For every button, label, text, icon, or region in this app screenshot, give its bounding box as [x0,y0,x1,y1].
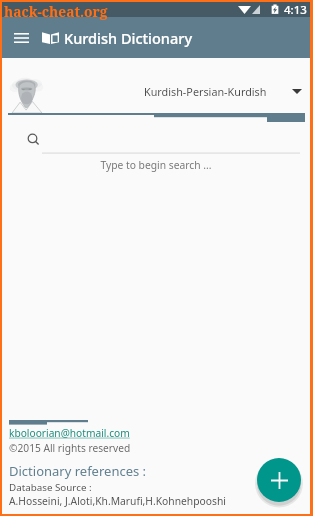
button[interactable]: Search [2,132,310,154]
staticText: hack-cheat.org [4,2,108,21]
button[interactable]: Dictionary language selector [144,84,302,99]
staticText: Kurdish Dictionary [64,28,193,48]
button[interactable]: Open navigation drawer [10,27,32,49]
button[interactable]: kboloorian@hotmail.com [9,426,130,440]
staticText: Database Source : [9,481,92,494]
staticText: ©2015 All rights reserved [9,441,131,455]
button[interactable]: Add word [257,458,301,502]
staticText: Kurdish-Persian-Kurdish [144,84,267,99]
staticText: 4:13 [284,2,307,17]
staticText: A.Hosseini, J.Aloti,Kh.Marufi,H.Kohnehpo… [9,494,226,508]
staticText: Type to begin search ... [2,158,310,172]
staticText: Dictionary references : [9,462,147,480]
